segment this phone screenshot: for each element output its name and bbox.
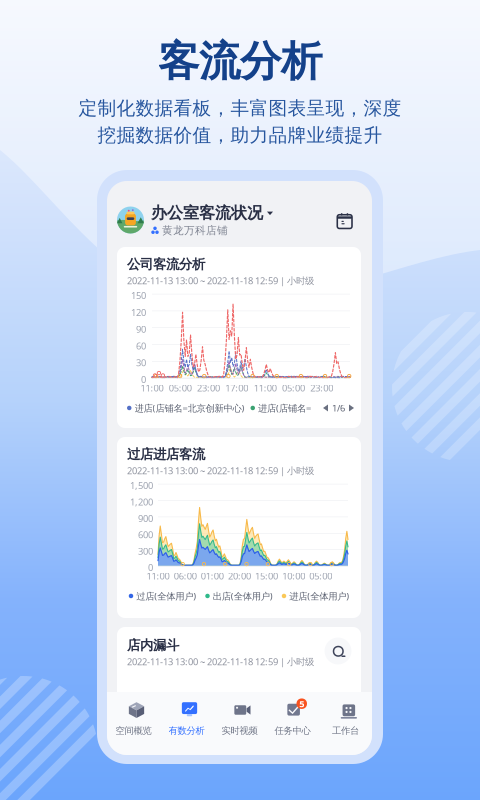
staticText: 定制化数据看板，丰富图表呈现，深度 [78,97,401,120]
staticText: 办公室客流状况 [151,203,263,223]
staticText: 11:00 [146,570,169,582]
staticText: 11:00 [140,382,163,394]
staticText: 任务中心 [274,725,310,736]
staticText: 01:00 [201,570,224,582]
staticText: 30 [136,356,146,369]
staticText: 客流分析 [158,36,322,87]
staticText: 5 [299,697,304,710]
staticText: 23:00 [197,382,220,394]
staticText: 挖掘数据价值，助力品牌业绩提升 [97,124,382,147]
staticText: 进店(店铺名=北京创新中心) [134,402,244,414]
staticText: 600 [138,528,153,541]
staticText: 进店(全体用户) [289,590,349,602]
button[interactable]: 5 [266,692,319,755]
staticText: 06:00 [174,570,197,582]
button[interactable]: 工作台 [319,692,372,755]
staticText: 10:00 [282,570,305,582]
staticText: 有数分析 [168,725,204,736]
staticText: 1,500 [130,479,153,492]
staticText: 0 [141,373,146,386]
staticText: 2022-11-13 13:00 ~ 2022-11-18 12:59 | 小时… [127,464,314,477]
staticText: 1,200 [130,496,153,508]
staticText: 出店(全体用户) [213,590,273,602]
staticText: 过店(全体用户) [136,590,196,602]
staticText: 1/6 [332,402,345,414]
button[interactable]: 有数分析 [160,692,213,755]
staticText: 120 [131,306,146,318]
staticText: 空间概览 [115,725,151,736]
staticText: 05:00 [169,382,192,394]
staticText: 150 [131,289,146,302]
staticText: 0 [148,561,153,574]
staticText: 店内漏斗 [127,637,179,653]
staticText: 2022-11-13 13:00 ~ 2022-11-18 12:59 | 小时… [127,655,314,668]
staticText: 17:00 [225,382,248,394]
staticText: 进店(店铺名= [258,402,311,414]
staticText: 300 [138,545,153,557]
staticText: 过店进店客流 [127,446,205,462]
staticText: 15:00 [255,570,278,582]
staticText: 工作台 [332,725,359,736]
button[interactable]: 实时视频 [213,692,266,755]
staticText: 2022-11-13 13:00 ~ 2022-11-18 12:59 | 小时… [127,274,314,287]
button[interactable]: 空间概览 [107,692,160,755]
staticText: 05:00 [282,382,305,394]
staticText: 05:00 [309,570,332,582]
staticText: 黄龙万科店铺 [162,224,228,237]
staticText: 实时视频 [221,725,257,736]
staticText: 60 [136,340,146,352]
button[interactable]: 办公室客流状况 [107,197,277,243]
button[interactable]: 搜索 [323,636,353,666]
staticText: 23:00 [310,382,333,394]
staticText: 公司客流分析 [127,256,205,272]
staticText: 20:00 [228,570,251,582]
staticText: 11:00 [254,382,277,394]
button[interactable]: 日历 [327,203,361,237]
staticText: 900 [138,512,153,524]
staticText: 90 [136,323,146,335]
